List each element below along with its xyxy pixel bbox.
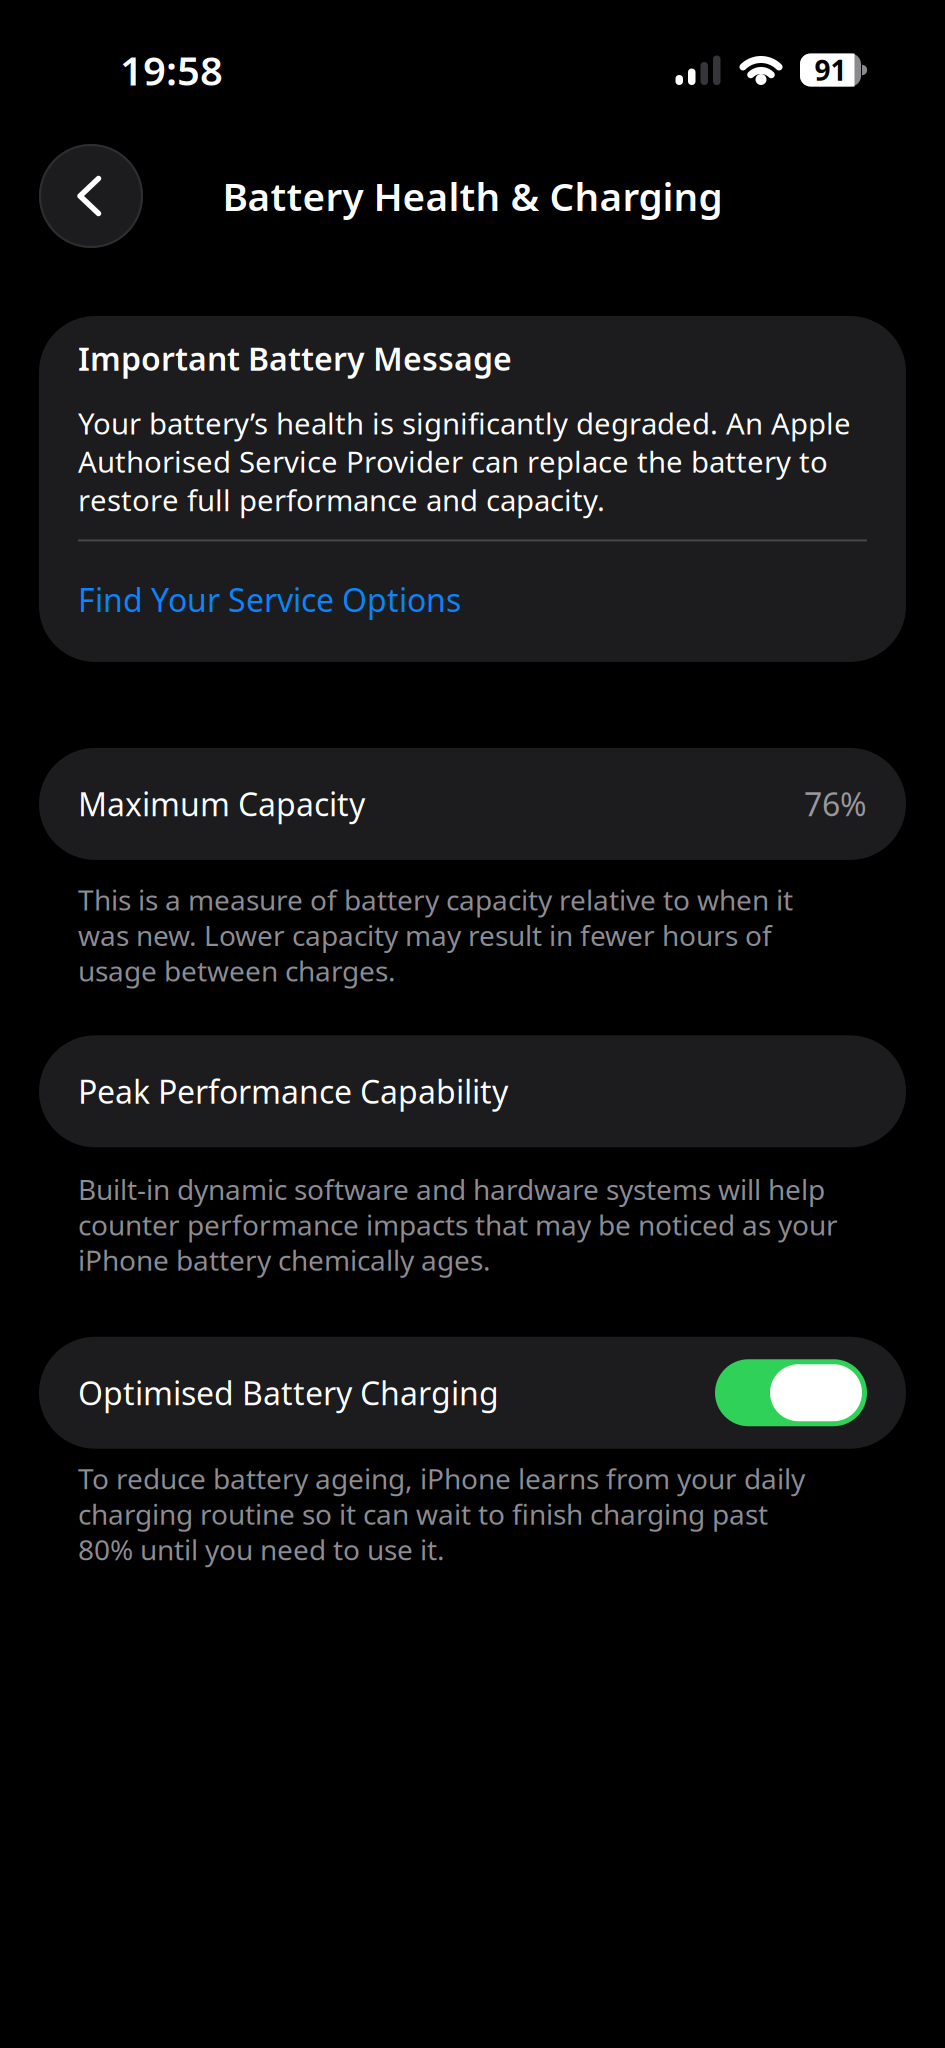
staticText: Find Your Service Options xyxy=(78,579,461,620)
staticText: Peak Performance Capability xyxy=(78,1071,508,1112)
staticText: Optimised Battery Charging xyxy=(78,1372,499,1413)
button[interactable]: Back xyxy=(39,144,143,248)
staticText: Built-in dynamic software and hardware s… xyxy=(78,1171,838,1278)
staticText: 91 xyxy=(814,52,846,88)
staticText: Important Battery Message xyxy=(78,338,512,378)
staticText: 19:58 xyxy=(120,45,223,95)
button[interactable]: Optimised Battery Charging xyxy=(715,1359,867,1426)
button[interactable]: Find Your Service Options xyxy=(78,579,461,620)
staticText: To reduce battery ageing, iPhone learns … xyxy=(78,1461,805,1567)
staticText: Your battery’s health is significantly d… xyxy=(78,404,851,518)
staticText: Maximum Capacity xyxy=(78,784,365,824)
staticText: Battery Health & Charging xyxy=(222,171,722,220)
staticText: 76% xyxy=(804,784,867,824)
staticText: This is a measure of battery capacity re… xyxy=(78,882,793,988)
